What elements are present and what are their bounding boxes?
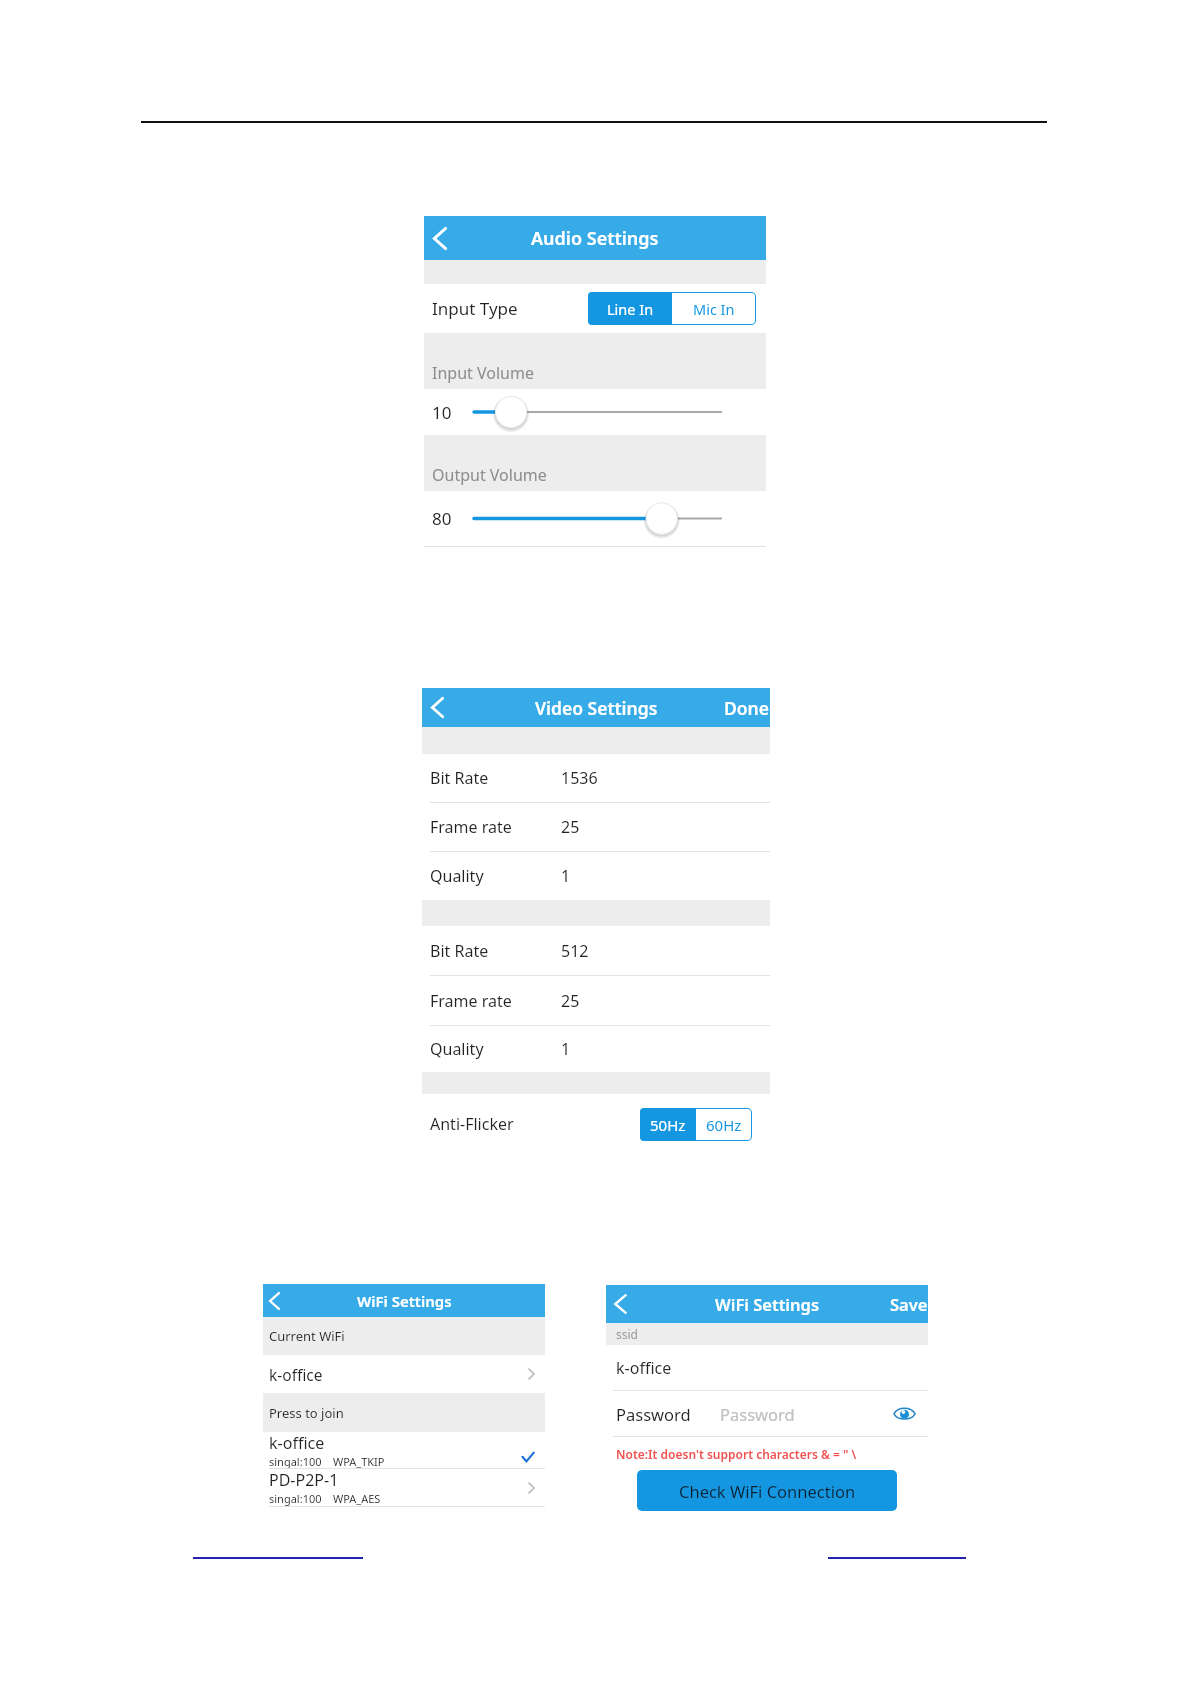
other: Open [528, 1482, 535, 1494]
staticText: Input Type [432, 297, 518, 320]
button[interactable]: k-office [606, 1345, 928, 1390]
button[interactable]: Back [269, 1292, 280, 1310]
staticText: Save [890, 1293, 928, 1315]
staticText: WiFi Settings [357, 1291, 452, 1311]
staticText: PD-P2P-1 [269, 1469, 339, 1491]
staticText: Password [720, 1403, 795, 1425]
staticText: Input Volume [432, 362, 534, 384]
button[interactable]: Back [431, 697, 444, 718]
other: Back [431, 697, 444, 718]
staticText: Anti-Flicker [430, 1113, 514, 1135]
button[interactable]: Frame rate [422, 803, 770, 851]
button[interactable]: PD-P2P-1 [263, 1469, 545, 1506]
staticText: Press to join [269, 1404, 344, 1422]
staticText: 25 [561, 816, 580, 838]
staticText: Mic In [693, 299, 735, 319]
staticText: WiFi Settings [715, 1293, 820, 1315]
button[interactable]: Check WiFi Connection [637, 1470, 897, 1511]
staticText: Quality [430, 865, 484, 887]
staticText: Frame rate [430, 990, 512, 1012]
staticText: 1 [561, 1038, 571, 1060]
staticText: Output Volume [432, 464, 547, 486]
staticText: ssid [616, 1326, 638, 1342]
staticText: Done [724, 696, 770, 720]
staticText: 25 [561, 990, 580, 1012]
button[interactable]: Back [614, 1294, 627, 1314]
staticText: 60Hz [706, 1115, 742, 1135]
staticText: Note:It doesn't support characters & = "… [616, 1446, 857, 1462]
staticText: singal:100 WPA_AES [269, 1491, 381, 1506]
staticText: Check WiFi Connection [679, 1480, 856, 1502]
staticText: Current WiFi [269, 1327, 345, 1345]
other: Back [433, 227, 447, 250]
button[interactable]: 80 [424, 491, 766, 546]
staticText: Line In [607, 299, 654, 319]
staticText: 512 [561, 940, 589, 962]
staticText: k-office [269, 1364, 323, 1385]
button[interactable]: Show password [893, 1406, 916, 1421]
staticText: Frame rate [430, 816, 512, 838]
button[interactable]: Line In [588, 292, 672, 325]
staticText: Bit Rate [430, 940, 489, 962]
button[interactable]: 10 [424, 389, 766, 435]
button[interactable]: Done [724, 696, 770, 720]
staticText: k-office [269, 1432, 325, 1454]
button[interactable]: Save [890, 1293, 928, 1315]
staticText: Bit Rate [430, 767, 489, 789]
button[interactable]: Quality [422, 1026, 770, 1072]
button[interactable]: k-office [263, 1432, 545, 1468]
button[interactable]: 60Hz [696, 1108, 752, 1141]
button[interactable]: Frame rate [422, 976, 770, 1025]
button[interactable]: Bit Rate [422, 754, 770, 802]
staticText: 10 [432, 401, 452, 424]
other: Back [269, 1292, 280, 1310]
other: Open [528, 1368, 535, 1380]
staticText: Audio Settings [531, 226, 659, 251]
button[interactable]: 50Hz [640, 1108, 696, 1141]
staticText: Quality [430, 1038, 484, 1060]
staticText: Video Settings [535, 696, 658, 720]
staticText: k-office [616, 1357, 672, 1379]
other: Back [614, 1294, 627, 1314]
button[interactable]: k-office [263, 1355, 545, 1393]
staticText: 50Hz [650, 1115, 686, 1135]
button[interactable]: Bit Rate [422, 926, 770, 975]
button[interactable]: Quality [422, 852, 770, 900]
staticText: singal:100 WPA_TKIP [269, 1454, 385, 1468]
button[interactable]: Back [433, 227, 447, 250]
button[interactable]: Mic In [672, 292, 756, 325]
staticText: 80 [432, 507, 452, 530]
staticText: 1 [561, 865, 571, 887]
staticText: 1536 [561, 767, 598, 789]
staticText: Password [616, 1403, 691, 1425]
